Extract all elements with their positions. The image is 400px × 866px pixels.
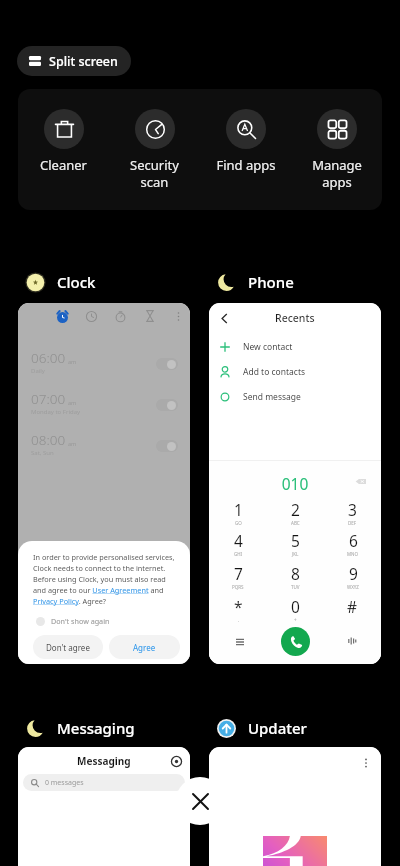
button[interactable]: Find apps [200, 89, 291, 210]
button[interactable]: Updater [209, 714, 307, 742]
staticText: 0 [291, 596, 300, 617]
button[interactable]: Backspace [351, 472, 369, 490]
staticText: 2 [291, 499, 300, 520]
staticText: * [234, 596, 243, 617]
staticText: WXYZ [347, 584, 359, 590]
button[interactable]: Don't show again [36, 616, 110, 626]
staticText: 07:00 [31, 390, 66, 408]
button[interactable]: 7 [209, 563, 267, 591]
staticText: In order to provide personalised service… [33, 552, 180, 606]
button[interactable]: 8 [267, 563, 324, 591]
button[interactable]: Voice record [342, 631, 361, 650]
staticText: . [238, 617, 240, 623]
staticText: + [294, 617, 297, 623]
button[interactable]: More options [209, 747, 381, 866]
staticText: am [68, 358, 77, 365]
staticText: Recents [275, 311, 315, 325]
staticText: 6 [349, 530, 358, 551]
button[interactable]: # [324, 596, 381, 624]
staticText: 08:00 [31, 431, 66, 449]
staticText: Agree [133, 642, 156, 653]
staticText: 4 [234, 530, 243, 551]
button[interactable]: 6 [324, 530, 381, 558]
button[interactable]: Add to contacts [209, 359, 381, 384]
staticText: New contact [243, 341, 293, 353]
staticText: Send message [243, 391, 301, 403]
button[interactable]: Split screen [17, 46, 131, 76]
button[interactable]: Toggle alarm [156, 440, 178, 452]
button[interactable]: Cleaner [18, 89, 109, 210]
staticText: Split screen [49, 53, 118, 70]
staticText: 010 [209, 473, 381, 494]
button[interactable]: 1 [209, 499, 267, 527]
button[interactable]: More options [358, 755, 374, 771]
button[interactable]: Settings [168, 753, 184, 769]
staticText: Add to contacts [243, 366, 306, 378]
staticText: Find apps [216, 156, 276, 174]
button[interactable]: Toggle alarm [156, 399, 178, 411]
button[interactable]: Menu [230, 632, 249, 651]
button[interactable]: 0 messages [23, 774, 185, 791]
button[interactable]: 9 [324, 563, 381, 591]
staticText: JKL [292, 551, 299, 557]
button[interactable]: Manage apps [291, 89, 382, 210]
staticText: am [68, 440, 77, 447]
button[interactable]: 4 [209, 530, 267, 558]
button[interactable]: Call [281, 627, 310, 656]
button[interactable]: Agree [109, 635, 180, 659]
staticText: 8 [291, 563, 300, 584]
staticText: MNO [347, 551, 359, 557]
button[interactable]: 0 [267, 596, 324, 624]
staticText: ABC [291, 520, 300, 526]
button[interactable]: Clock [18, 268, 96, 296]
button[interactable]: Security scan [109, 89, 200, 210]
button[interactable]: Don't agree [33, 635, 103, 659]
staticText: 1 [234, 499, 243, 520]
staticText: GHI [234, 551, 243, 557]
staticText: Messaging [57, 718, 135, 738]
staticText: # [347, 596, 358, 617]
button[interactable]: Phone [209, 268, 294, 296]
button[interactable]: Back [209, 303, 381, 664]
staticText: GO [235, 520, 242, 526]
staticText: DEF [348, 520, 357, 526]
staticText: Cleaner [40, 156, 87, 174]
button[interactable]: Toggle alarm [156, 358, 178, 370]
button[interactable]: 2 [267, 499, 324, 527]
staticText: Phone [248, 272, 294, 292]
staticText: Sat, Sun [31, 449, 54, 457]
button[interactable]: 06:00 [18, 303, 190, 664]
staticText: Daily [31, 367, 45, 375]
button[interactable]: Send message [209, 384, 381, 409]
staticText: 06:00 [31, 349, 66, 367]
button[interactable]: Messaging [18, 714, 135, 742]
staticText: Clock [57, 272, 96, 292]
staticText: 5 [291, 530, 300, 551]
staticText: Updater [248, 718, 307, 738]
staticText: PQRS [232, 584, 244, 590]
staticText: 7 [234, 563, 243, 584]
button[interactable]: Close [176, 777, 224, 825]
staticText: Monday to Friday [31, 408, 81, 416]
staticText: am [68, 399, 77, 406]
staticText: Manage apps [312, 156, 362, 191]
staticText: Messaging [77, 754, 131, 768]
staticText: Don't show again [51, 616, 110, 626]
staticText: Security scan [130, 156, 179, 191]
button[interactable]: Back [215, 309, 233, 327]
button[interactable]: New contact [209, 334, 381, 359]
button[interactable]: Messaging [18, 747, 190, 866]
staticText: 3 [348, 499, 357, 520]
button[interactable]: 5 [267, 530, 324, 558]
staticText: 0 messages [45, 778, 84, 788]
staticText: 9 [349, 563, 358, 584]
button[interactable]: * [209, 596, 267, 624]
button[interactable]: 3 [324, 499, 381, 527]
staticText: Don't agree [46, 642, 90, 653]
staticText: TUV [291, 584, 300, 590]
